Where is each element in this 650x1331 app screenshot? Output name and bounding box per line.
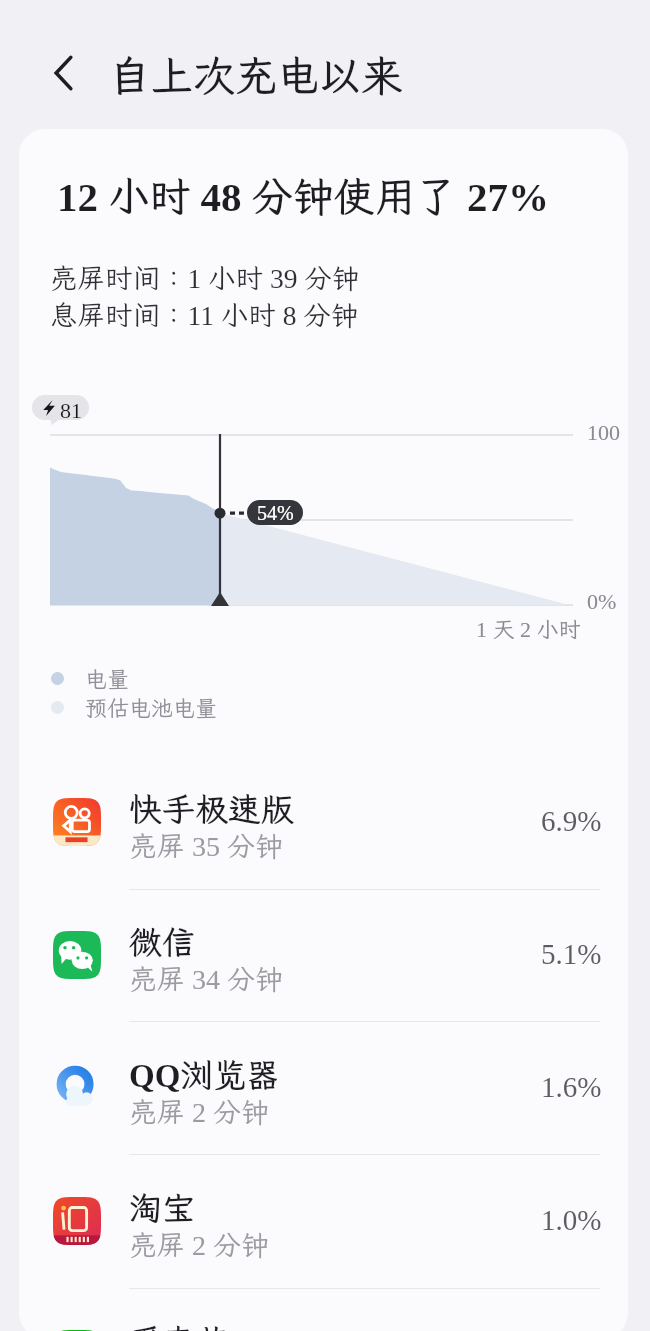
staticText: 息屏时间：11 小时 8 分钟 <box>50 297 359 333</box>
button[interactable]: Back <box>40 49 88 97</box>
staticText: 12 小时 48 分钟使用了 27% <box>57 169 549 223</box>
staticText: 亮屏 35 分钟 <box>129 827 284 864</box>
staticText: 0% <box>587 589 617 613</box>
staticText: 1.0% <box>541 1204 602 1236</box>
staticText: 微信 <box>129 920 195 963</box>
staticText: QQ浏览器 <box>129 1053 280 1096</box>
staticText: 1.6% <box>541 1071 602 1103</box>
button[interactable]: 微信 <box>19 889 628 1022</box>
staticText: 6.9% <box>541 805 602 837</box>
staticText: 淘宝 <box>129 1186 195 1229</box>
button[interactable]: QQ浏览器 <box>19 1022 628 1155</box>
staticText: 爱奇艺 <box>129 1319 228 1331</box>
button[interactable]: 快手极速版 <box>19 756 628 889</box>
staticText: 100 <box>587 420 620 444</box>
staticText: 亮屏 2 分钟 <box>129 1093 270 1130</box>
staticText: 亮屏时间：1 小时 39 分钟 <box>50 260 360 296</box>
staticText: 电量 <box>85 664 130 693</box>
staticText: 自上次充电以来 <box>109 48 404 103</box>
staticText: 5.1% <box>541 938 602 970</box>
staticText: 1 天 2 小时 <box>476 614 581 643</box>
staticText: 预估电池电量 <box>85 693 218 722</box>
button[interactable]: 淘宝 <box>19 1155 628 1288</box>
staticText: 快手极速版 <box>129 787 294 830</box>
staticText: 81 <box>60 398 82 422</box>
button[interactable]: 爱奇艺 <box>19 1288 628 1331</box>
staticText: 54% <box>257 502 294 524</box>
staticText: 亮屏 34 分钟 <box>129 960 284 997</box>
staticText: 亮屏 2 分钟 <box>129 1226 270 1263</box>
